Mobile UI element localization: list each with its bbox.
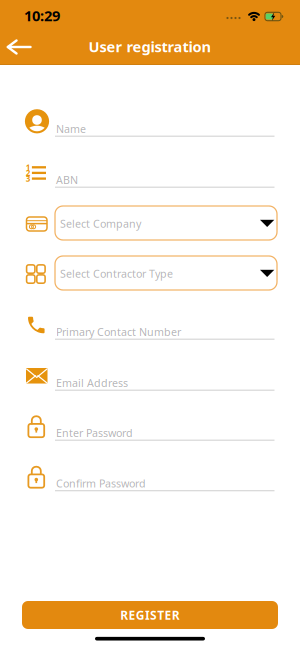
staticText: 10:29 — [24, 6, 60, 25]
staticText: Select Contractor Type — [60, 266, 173, 281]
button[interactable] — [0, 29, 40, 65]
staticText: Enter Password — [56, 426, 133, 440]
button[interactable]: Select Contractor Type — [55, 256, 277, 290]
button[interactable]: Name — [0, 100, 300, 144]
staticText: Select Company — [60, 216, 141, 231]
staticText: 1 — [26, 162, 31, 173]
staticText: ABN — [56, 173, 78, 187]
staticText: Confirm Password — [56, 476, 146, 490]
button[interactable]: Email Address — [0, 354, 300, 398]
button[interactable]: Enter Password — [0, 404, 300, 448]
staticText: Email Address — [56, 376, 128, 390]
button[interactable]: Select Company — [55, 206, 277, 240]
button[interactable]: Confirm Password — [0, 454, 300, 498]
button[interactable]: Primary Contact Number — [0, 303, 300, 347]
staticText: Name — [56, 122, 86, 136]
staticText: 2 — [26, 168, 31, 178]
staticText: Primary Contact Number — [56, 325, 181, 339]
staticText: REGISTER — [120, 607, 180, 623]
button[interactable]: REGISTER — [22, 601, 278, 629]
button[interactable]: 1 — [0, 151, 300, 195]
staticText: User registration — [88, 37, 211, 56]
staticText: 3 — [26, 173, 31, 184]
